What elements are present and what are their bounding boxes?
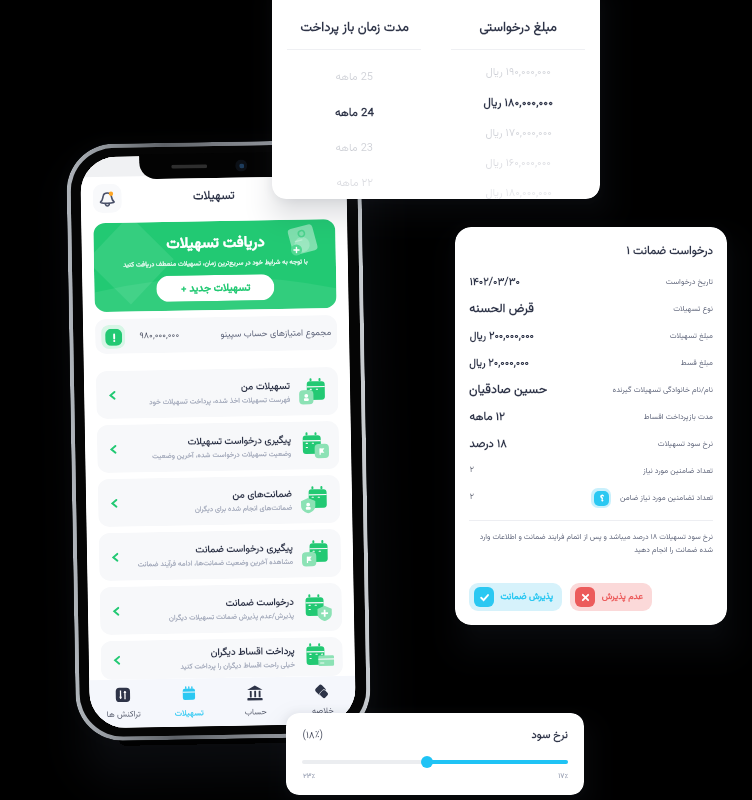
staticText: فهرست تسهیلات اخذ شده، پرداخت تسهیلات خو… [148,395,290,408]
staticText: ۲۰,۰۰۰,۰۰۰ ریال [469,355,529,371]
staticText: نام/نام خانوادگی تسهیلات گیرنده [612,384,713,396]
staticText: (۱۸٪) [302,728,323,744]
staticText: قرض الحسنه [469,299,534,319]
staticText: مدت زمان باز پرداخت [300,18,409,38]
button[interactable]: تراکنش ها [89,679,156,728]
button[interactable]: تسهیلات جدید + [156,274,274,302]
staticText: ۱۶۰,۰۰۰,۰۰۰ ریال [485,155,551,172]
staticText: حساب [245,705,267,719]
staticText: ۱۸ درصد [469,435,507,453]
staticText: ؟ [600,492,604,506]
staticText: ضمانت‌های انجام شده برای دیگران [194,503,292,515]
button[interactable]: Open [99,529,341,581]
staticText: 23 ماهه [335,140,373,157]
button[interactable]: Rate slider [421,756,433,768]
other: Open [106,389,119,402]
staticText: مبلغ قسط [680,357,713,369]
staticText: نرخ سود تسهیلات ۱۸ درصد میباشد و پس از ا… [469,531,713,556]
button[interactable]: Help [591,488,611,508]
other: Open [107,443,120,456]
staticText: مدت بازپرداخت اقساط [643,411,713,423]
staticText: تعداد تضامنین مورد نیاز ضامن [619,492,713,504]
button[interactable]: Open [97,421,339,473]
staticText: خلاصه [312,704,334,717]
staticText: مبلغ تسهیلات [669,330,713,342]
staticText: ۲۳٪ [302,771,315,782]
staticText: تسهیلات من [240,379,290,395]
staticText: تسهیلات [193,187,235,206]
button[interactable]: Open [98,475,340,527]
staticText: وضعیت تسهیلات درخواست شده، آخرین وضعیت [151,449,291,462]
button[interactable]: تسهیلات [155,678,222,727]
staticText: درخواست ضمانت ۱ [626,242,713,260]
staticText: پیگیری درخواست تسهیلات [187,433,291,449]
other: Open [109,551,122,564]
staticText: پذیرش ضمانت [500,590,553,604]
staticText: پذیرش/عدم پذیرش ضمانت تسهیلات دیگران [168,611,294,624]
other: Open [108,497,121,510]
button[interactable]: خلاصه [288,676,356,725]
staticText: تعداد ضامنین مورد نیاز [642,465,713,477]
staticText: ضمانت‌های من [232,487,292,503]
staticText: با توجه به شرایط خود در سریع‌ترین زمان، … [123,256,308,270]
staticText: نوع تسهیلات [673,303,713,315]
staticText: ۱۲ ماهه [469,408,505,426]
other: Open [111,654,124,667]
staticText: مشاهده آخرین وضعیت ضمانت‌ها، ادامه فرآین… [137,557,293,570]
staticText: حسین صادقیان [469,380,547,400]
staticText: مجموع امتیازهای حساب سپینو [220,326,331,342]
button[interactable]: Open [100,637,343,680]
staticText: تراکنش ها [106,707,141,721]
button[interactable]: Open [99,583,342,635]
button[interactable]: حساب [221,677,289,726]
staticText: تسهیلات [175,706,204,720]
other: Open [110,605,123,618]
button[interactable]: Notifications [92,184,122,213]
staticText: ۱۷۰,۰۰۰,۰۰۰ ریال [485,125,552,142]
staticText: ۱۷٪ [558,771,568,782]
button[interactable]: ۹۸۰,۰۰۰,۰۰۰ [95,315,337,354]
staticText: ۱۸۰,۰۰۰,۰۰۰ ریال [485,185,552,199]
staticText: دریافت تسهیلات [165,231,265,256]
staticText: ۲ [469,464,474,477]
staticText: مبلغ درخواستی [479,18,557,38]
staticText: تسهیلات جدید + [180,279,250,297]
staticText: ۲ [469,491,474,504]
staticText: پیگیری درخواست ضمانت [195,541,293,557]
staticText: نرخ سود تسهیلات [657,438,713,450]
button[interactable]: Open [96,367,339,419]
staticText: ۲۲ ماهه [336,175,373,192]
staticText: پرداخت اقساط دیگران [211,644,295,660]
staticText: درخواست ضمانت [225,595,294,611]
staticText: نرخ سود [531,727,568,744]
staticText: تاریخ درخواست [665,276,713,288]
button[interactable]: عدم پذیرش [570,583,652,611]
staticText: ۲۰۰,۰۰۰,۰۰۰ ریال [469,328,534,344]
staticText: ۱۴۰۲/۰۳/۳۰ [469,274,520,290]
staticText: ۹۸۰,۰۰۰,۰۰۰ [139,329,179,343]
staticText: ۱۹۰,۰۰۰,۰۰۰ ریال [485,64,551,81]
staticText: 24 ماهه [334,104,374,122]
staticText: ۱۸۰,۰۰۰,۰۰۰ ریال [483,94,553,112]
staticText: خیلی راحت اقساط دیگران را پرداخت کنید [180,660,295,673]
button[interactable]: پذیرش ضمانت [469,583,562,611]
staticText: 25 ماهه [335,69,373,86]
staticText: عدم پذیرش [601,590,643,604]
